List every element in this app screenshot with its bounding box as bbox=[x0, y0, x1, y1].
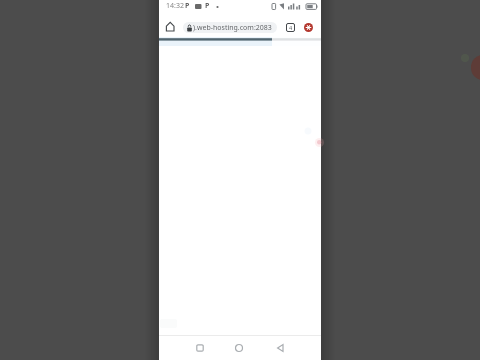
button[interactable] bbox=[231, 340, 247, 356]
button[interactable]: ).web-hosting.com:2083 bbox=[183, 22, 277, 33]
button[interactable] bbox=[304, 23, 313, 32]
staticText: ).web-hosting.com:2083 bbox=[193, 23, 272, 33]
button[interactable] bbox=[163, 19, 178, 34]
staticText: P bbox=[205, 1, 210, 11]
staticText: 4 bbox=[289, 24, 293, 31]
button[interactable] bbox=[272, 340, 288, 356]
button[interactable]: 4 bbox=[286, 23, 295, 32]
staticText: P bbox=[185, 1, 190, 11]
button[interactable] bbox=[192, 340, 208, 356]
staticText: 14:32 bbox=[166, 1, 184, 11]
